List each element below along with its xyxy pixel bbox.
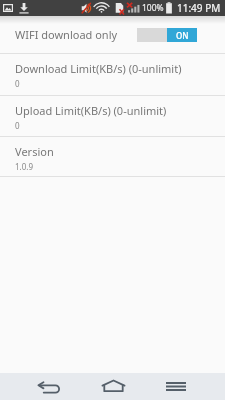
button[interactable]: Upload Limit(KB/s) (0-unlimit) <box>0 96 225 136</box>
staticText: Download Limit(KB/s) (0-unlimit) <box>15 61 182 76</box>
staticText: 0 <box>15 120 20 131</box>
staticText: Version <box>15 144 54 159</box>
staticText: 11:49 PM <box>177 1 221 15</box>
button[interactable]: Recent apps <box>153 373 199 400</box>
staticText: ON <box>176 30 189 41</box>
button[interactable]: Back <box>26 373 72 400</box>
button[interactable]: Download Limit(KB/s) (0-unlimit) <box>0 54 225 95</box>
staticText: 1.0.9 <box>15 161 34 172</box>
button[interactable]: WIFI download only <box>0 16 225 53</box>
button[interactable]: Home <box>90 373 136 400</box>
staticText: 100% <box>142 2 164 14</box>
staticText: Upload Limit(KB/s) (0-unlimit) <box>15 103 167 118</box>
staticText: WIFI download only <box>15 27 118 42</box>
button[interactable]: Version <box>0 137 225 176</box>
button[interactable]: WIFI download only toggle <box>137 28 197 42</box>
staticText: 0 <box>15 78 20 89</box>
